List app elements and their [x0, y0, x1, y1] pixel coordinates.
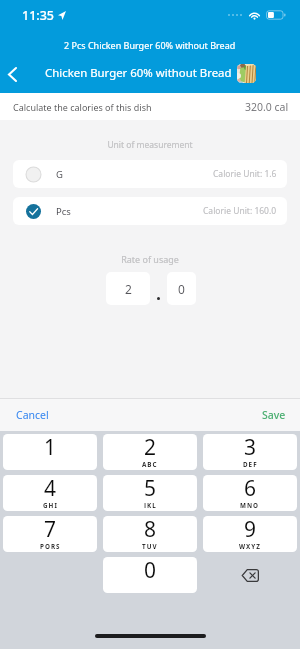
staticText: Calculate the calories of this dish	[13, 101, 152, 113]
staticText: Unit of measurement	[0, 139, 300, 151]
staticText: Cancel	[16, 408, 49, 422]
button[interactable]: 8	[103, 516, 197, 552]
button[interactable]: Delete	[203, 557, 297, 593]
staticText: 2 Pcs Chicken Burger 60% without Bread	[64, 39, 236, 51]
button[interactable]: Pcs	[13, 197, 287, 225]
staticText: 320.0 cal	[245, 100, 289, 114]
button[interactable]: 9	[203, 516, 297, 552]
button[interactable]: 2	[106, 272, 150, 305]
staticText: 9	[244, 516, 257, 544]
staticText: Rate of usage	[0, 253, 300, 265]
staticText: 2	[144, 434, 157, 462]
staticText: 4	[44, 475, 57, 503]
button[interactable]: 3	[203, 434, 297, 470]
button[interactable]: Save	[254, 399, 300, 431]
staticText: ABC	[142, 460, 158, 467]
staticText: TUV	[142, 542, 158, 549]
staticText: DEF	[243, 460, 258, 467]
staticText: 0	[144, 557, 157, 585]
staticText: Calorie Unit: 1.6	[213, 168, 277, 180]
staticText: 0	[178, 281, 185, 297]
staticText: G	[56, 168, 63, 181]
staticText: WXYZ	[239, 542, 261, 549]
staticText: 7	[44, 516, 57, 544]
button[interactable]: 7	[3, 516, 97, 552]
staticText: Calorie Unit: 160.0	[203, 205, 277, 217]
button[interactable]: 0	[103, 557, 197, 593]
staticText: Pcs	[56, 205, 71, 218]
staticText: PQRS	[40, 542, 61, 549]
staticText: 5	[144, 475, 157, 503]
staticText: JKL	[144, 501, 157, 508]
staticText: GHI	[43, 501, 58, 508]
button[interactable]: 6	[203, 475, 297, 511]
staticText: 6	[244, 475, 257, 503]
staticText: Chicken Burger 60% without Bread	[45, 65, 232, 81]
staticText: MNO	[240, 501, 260, 508]
staticText: Save	[262, 408, 286, 422]
staticText: 2	[125, 281, 132, 297]
staticText: 11:35	[22, 7, 55, 24]
button[interactable]: 5	[103, 475, 197, 511]
button[interactable]: 4	[3, 475, 97, 511]
staticText: 3	[244, 434, 257, 462]
staticText: 8	[144, 516, 157, 544]
button[interactable]: 2	[103, 434, 197, 470]
button[interactable]: 1	[3, 434, 97, 470]
button[interactable]: 0	[167, 272, 196, 305]
staticText: 1	[44, 434, 57, 462]
button[interactable]: G	[13, 160, 287, 188]
button[interactable]: Back	[0, 59, 24, 89]
button[interactable]: Cancel	[0, 399, 57, 431]
